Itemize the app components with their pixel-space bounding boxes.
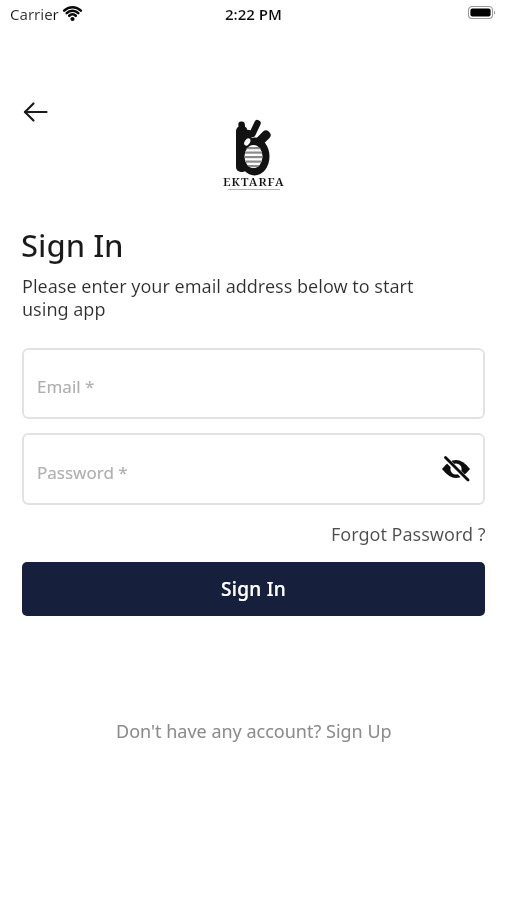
staticText: Don't have any account? [116, 719, 326, 744]
staticText: EKTARFA [223, 174, 285, 190]
staticText: Sign In [221, 576, 286, 602]
button[interactable]: Forgot Password ? [331, 522, 486, 547]
button[interactable] [440, 455, 472, 483]
button[interactable]: Sign In [22, 562, 485, 616]
staticText: Email * [37, 375, 95, 398]
staticText: Sign Up [326, 719, 392, 744]
staticText: Please enter your email address below to… [22, 274, 414, 321]
staticText: Forgot Password ? [331, 522, 486, 547]
staticText: Carrier [10, 4, 59, 24]
button[interactable] [20, 98, 52, 126]
staticText: 2:22 PM [225, 4, 282, 24]
staticText: Password * [37, 461, 128, 484]
staticText: Sign In [21, 224, 124, 266]
button[interactable]: Email * [22, 348, 485, 419]
button[interactable]: Password * [22, 433, 485, 505]
button[interactable]: Sign Up [326, 719, 392, 744]
